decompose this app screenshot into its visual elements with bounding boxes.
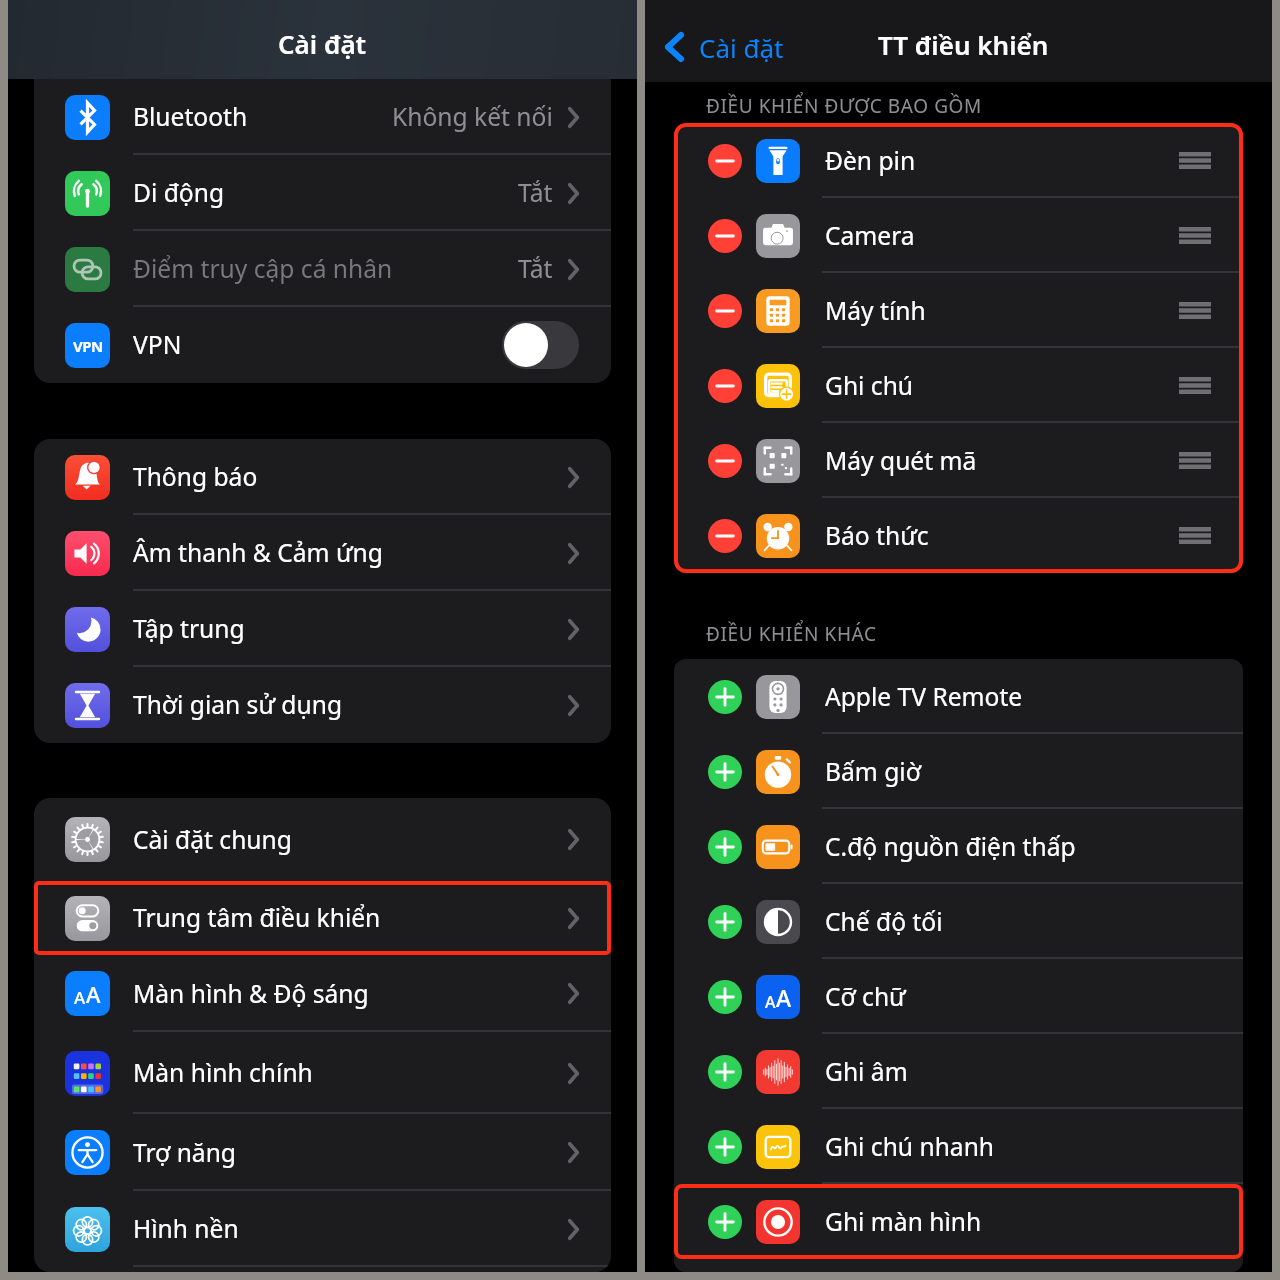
staticText: Cài đặt chung (133, 823, 292, 857)
button[interactable]: Thông báo (34, 439, 611, 515)
button[interactable]: Add control (674, 1184, 1243, 1259)
button[interactable]: Add control (708, 1055, 742, 1089)
staticText: Trung tâm điều khiển (133, 901, 381, 935)
other: Reorder (1179, 302, 1211, 319)
other: Reorder (1179, 377, 1211, 394)
staticText: Hình nền (133, 1212, 239, 1246)
staticText: Ghi âm (825, 1055, 908, 1089)
staticText: Báo thức (825, 519, 929, 553)
staticText: A (765, 991, 776, 1013)
staticText: Máy quét mã (825, 444, 977, 478)
button[interactable]: Tập trung (34, 591, 611, 667)
button[interactable]: Remove control (708, 144, 742, 178)
staticText: Tập trung (133, 612, 245, 646)
staticText: VPN (133, 328, 182, 362)
staticText: Camera (825, 219, 915, 253)
button[interactable]: Remove control (708, 519, 742, 553)
other: Reorder (1179, 227, 1211, 244)
button[interactable]: Remove control (708, 219, 742, 253)
button[interactable]: Âm thanh & Cảm ứng (34, 515, 611, 591)
staticText: Thông báo (133, 460, 258, 494)
staticText: Máy tính (825, 294, 926, 328)
button[interactable]: Add control (674, 884, 1243, 959)
button[interactable]: Add control (708, 1130, 742, 1164)
button[interactable]: Add control (674, 809, 1243, 884)
staticText: Đèn pin (825, 144, 916, 178)
other: Reorder (1179, 527, 1211, 544)
staticText: Chế độ tối (825, 905, 943, 939)
other: Reorder (1179, 152, 1211, 169)
staticText: ĐIỀU KHIỂN ĐƯỢC BAO GỒM (706, 93, 982, 119)
button[interactable]: Add control (674, 1109, 1243, 1184)
staticText: A (74, 986, 86, 1009)
staticText: Màn hình chính (133, 1056, 313, 1090)
button[interactable]: Trung tâm điều khiển (34, 881, 611, 955)
staticText: Apple TV Remote (825, 680, 1023, 714)
button[interactable]: Remove control (674, 198, 1243, 273)
button[interactable]: Add control (674, 734, 1243, 809)
staticText: Tắt (518, 176, 553, 210)
button[interactable]: VPN (34, 307, 611, 383)
staticText: Ghi màn hình (825, 1205, 982, 1239)
staticText: VPN (73, 336, 103, 356)
button[interactable]: Add control (708, 755, 742, 789)
button[interactable]: Hình nền (34, 1191, 611, 1267)
staticText: Cỡ chữ (825, 980, 906, 1014)
staticText: Cài đặt (699, 30, 784, 65)
button[interactable]: VPN toggle (502, 321, 579, 369)
button[interactable]: Remove control (674, 498, 1243, 573)
button[interactable]: Trợ năng (34, 1114, 611, 1191)
staticText: Không kết nối (392, 100, 553, 134)
button[interactable]: Remove control (674, 123, 1243, 198)
staticText: Bluetooth (133, 100, 248, 134)
button[interactable]: Remove control (708, 294, 742, 328)
button[interactable]: Add control (674, 659, 1243, 734)
button[interactable]: Add control (674, 959, 1243, 1034)
button[interactable]: Remove control (674, 348, 1243, 423)
staticText: Màn hình & Độ sáng (133, 977, 369, 1011)
staticText: Ghi chú nhanh (825, 1130, 995, 1164)
button[interactable]: A (34, 955, 611, 1032)
staticText: Di động (133, 176, 225, 210)
button[interactable]: Điểm truy cập cá nhân (34, 231, 611, 307)
button[interactable]: Remove control (708, 444, 742, 478)
button[interactable]: Add control (708, 905, 742, 939)
staticText: Trợ năng (133, 1136, 236, 1170)
button[interactable]: Add control (708, 1205, 742, 1239)
other: Reorder (1179, 452, 1211, 469)
button[interactable]: Add control (708, 830, 742, 864)
button[interactable]: Màn hình chính (34, 1032, 611, 1114)
button[interactable]: Add control (708, 980, 742, 1014)
staticText: A (86, 979, 101, 1009)
button[interactable]: Bluetooth (34, 79, 611, 155)
staticText: ĐIỀU KHIỂN KHÁC (706, 621, 877, 647)
staticText: Điểm truy cập cá nhân (133, 252, 393, 286)
staticText: Cài đặt (278, 26, 367, 61)
button[interactable]: Di động (34, 155, 611, 231)
staticText: TT điều khiển (878, 27, 1049, 62)
staticText: Bấm giờ (825, 755, 921, 789)
staticText: Thời gian sử dụng (133, 688, 343, 722)
button[interactable]: Thời gian sử dụng (34, 667, 611, 743)
button[interactable]: Remove control (674, 273, 1243, 348)
button[interactable]: Back to Cài đặt (645, 15, 794, 79)
button[interactable]: Cài đặt chung (34, 798, 611, 881)
button[interactable]: Add control (674, 1034, 1243, 1109)
staticText: Tắt (518, 252, 553, 286)
button[interactable]: Remove control (674, 423, 1243, 498)
staticText: C.độ nguồn điện thấp (825, 830, 1076, 864)
button[interactable]: Add control (708, 680, 742, 714)
button[interactable]: Remove control (708, 369, 742, 403)
staticText: Âm thanh & Cảm ứng (133, 536, 383, 570)
staticText: Ghi chú (825, 369, 914, 403)
staticText: A (776, 982, 792, 1013)
